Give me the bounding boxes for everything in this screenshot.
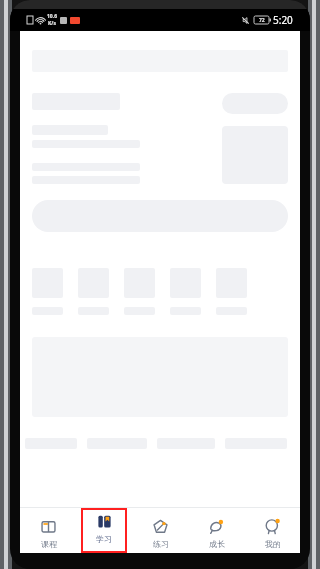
staticText: 练习 xyxy=(153,539,169,549)
staticText: 学习 xyxy=(96,534,112,544)
button[interactable]: 成长 xyxy=(207,513,226,549)
button[interactable]: 练习 xyxy=(151,513,170,549)
other: 我的 xyxy=(264,518,281,535)
button[interactable]: 学习 xyxy=(81,508,127,553)
staticText: 课程 xyxy=(41,539,57,549)
other: 学习 xyxy=(96,513,113,530)
button[interactable]: 我的 xyxy=(263,513,282,549)
button[interactable]: 课程 xyxy=(39,513,58,549)
staticText: 成长 xyxy=(209,539,225,549)
other: 课程 xyxy=(40,518,57,535)
staticText: K/s xyxy=(48,20,56,27)
staticText: 我的 xyxy=(265,539,281,549)
staticText: 5:20 xyxy=(273,13,293,27)
staticText: 10.6 xyxy=(47,13,57,20)
other: 练习 xyxy=(152,518,169,535)
other: 成长 xyxy=(208,518,225,535)
staticText: 72 xyxy=(259,17,265,24)
